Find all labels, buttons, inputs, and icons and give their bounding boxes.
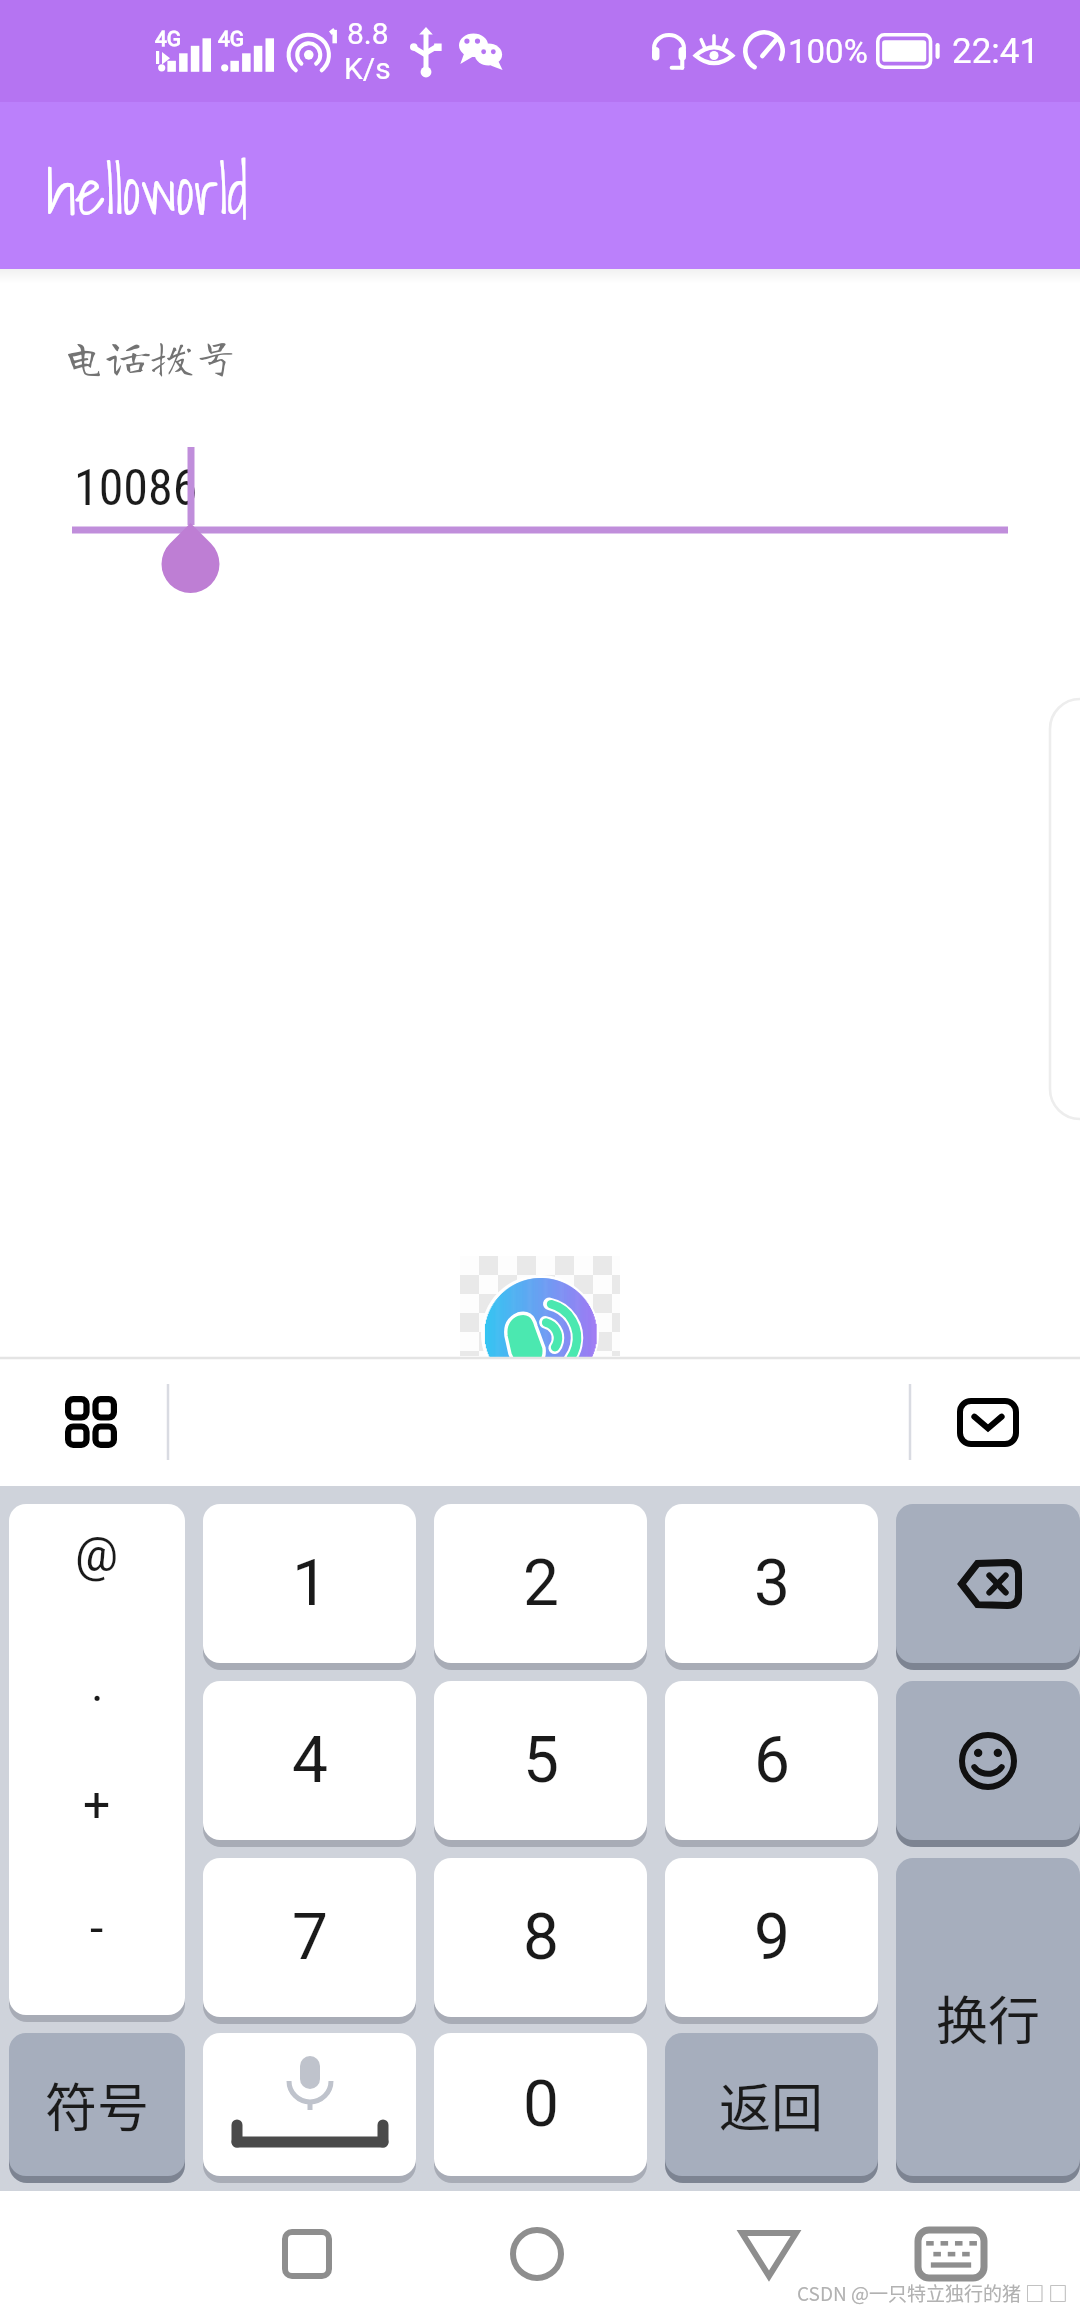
staticText: 2 bbox=[523, 1546, 559, 1621]
button[interactable]: 4 bbox=[203, 1681, 416, 1840]
staticText: 3 bbox=[754, 1546, 790, 1621]
button[interactable]: 换行 bbox=[896, 1858, 1080, 2176]
staticText: 4G bbox=[218, 27, 245, 52]
staticText: 9 bbox=[754, 1900, 790, 1975]
staticText: + bbox=[83, 1776, 111, 1832]
staticText: - bbox=[90, 1900, 104, 1956]
staticText: 1 bbox=[292, 1546, 328, 1621]
staticText: 7 bbox=[292, 1900, 328, 1975]
staticText: 100% bbox=[788, 32, 868, 71]
button[interactable]: 7 bbox=[203, 1858, 416, 2017]
staticText: 6 bbox=[754, 1723, 790, 1798]
staticText: 换行 bbox=[936, 1980, 1041, 2055]
staticText: @ bbox=[75, 1526, 119, 1582]
staticText: 0 bbox=[523, 2067, 559, 2142]
button[interactable]: 3 bbox=[665, 1504, 878, 1663]
staticText: 10086 bbox=[74, 459, 198, 518]
staticText: 8.8 bbox=[347, 16, 389, 51]
button[interactable]: Space, voice input bbox=[203, 2033, 416, 2176]
button[interactable]: Phone number field, 10086 bbox=[0, 429, 1080, 549]
staticText: 4G bbox=[155, 27, 182, 52]
staticText: CSDN @一只特立独行的猪 □ □ bbox=[797, 2279, 1068, 2307]
button[interactable]: 9 bbox=[665, 1858, 878, 2017]
button[interactable]: 2 bbox=[434, 1504, 647, 1663]
button[interactable]: 1 bbox=[203, 1504, 416, 1663]
staticText: 22:41 bbox=[952, 31, 1040, 72]
staticText: helloworld bbox=[46, 140, 248, 243]
staticText: . bbox=[91, 1656, 104, 1712]
button[interactable]: Keyboard layouts bbox=[49, 1381, 133, 1463]
button[interactable]: 5 bbox=[434, 1681, 647, 1840]
button[interactable]: 6 bbox=[665, 1681, 878, 1840]
button[interactable]: Emoji bbox=[896, 1681, 1080, 1840]
button[interactable]: Backspace bbox=[896, 1504, 1080, 1663]
button[interactable]: 返回 bbox=[665, 2033, 878, 2176]
button[interactable]: Back bbox=[724, 2209, 814, 2299]
button[interactable]: Hide keyboard bbox=[946, 1379, 1030, 1465]
staticText: 返回 bbox=[719, 2067, 824, 2142]
button[interactable]: Home bbox=[492, 2209, 582, 2299]
staticText: 8 bbox=[523, 1900, 559, 1975]
staticText: 符号 bbox=[45, 2067, 150, 2142]
staticText: 4 bbox=[292, 1723, 328, 1798]
button[interactable]: 符号 bbox=[9, 2033, 185, 2176]
button[interactable]: 8 bbox=[434, 1858, 647, 2017]
button[interactable]: 0 bbox=[434, 2033, 647, 2176]
staticText: 电话拨号 bbox=[62, 334, 238, 378]
button[interactable]: Symbols @ . + - bbox=[9, 1504, 185, 2015]
button[interactable]: Switch keyboard bbox=[906, 2209, 996, 2299]
staticText: K/s bbox=[344, 51, 391, 86]
button[interactable]: Recents bbox=[262, 2209, 352, 2299]
staticText: 5 bbox=[523, 1723, 559, 1798]
